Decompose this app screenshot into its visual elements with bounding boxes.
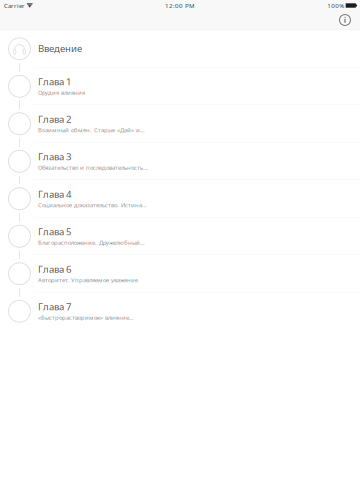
- staticText: 12:00 PM: [165, 1, 195, 10]
- staticText: Глава 5: [38, 225, 71, 238]
- staticText: Авторитет. Управляемое уважение: [38, 276, 138, 284]
- button[interactable]: Глава 4: [0, 180, 360, 217]
- button[interactable]: Глава 2: [0, 105, 360, 142]
- staticText: 100%: [327, 1, 344, 10]
- staticText: Carrier: [4, 1, 25, 10]
- staticText: Глава 4: [38, 187, 71, 201]
- button[interactable]: Глава 5: [0, 217, 360, 255]
- staticText: Глава 1: [38, 75, 71, 88]
- button[interactable]: Глава 7: [0, 292, 360, 330]
- button[interactable]: Глава 6: [0, 255, 360, 292]
- staticText: «Быстрорастворимое» влияние…: [38, 313, 134, 321]
- staticText: Глава 2: [38, 112, 71, 126]
- staticText: Обязательство и последовательность…: [38, 163, 148, 171]
- staticText: Орудия влияния: [38, 88, 85, 96]
- staticText: Взаимный обмен. Старые «Дай» и…: [38, 126, 145, 134]
- button[interactable]: Info: [332, 11, 358, 29]
- staticText: Глава 6: [38, 262, 71, 276]
- button[interactable]: Глава 1: [0, 67, 360, 105]
- button[interactable]: Глава 3: [0, 142, 360, 180]
- button[interactable]: Введение: [0, 30, 360, 67]
- staticText: Глава 7: [38, 300, 71, 313]
- staticText: Глава 3: [38, 150, 71, 163]
- staticText: Введение: [38, 42, 82, 55]
- staticText: Благорасположение. Дружелюбный…: [38, 238, 145, 246]
- staticText: Социальное доказательство. Истина…: [38, 201, 147, 209]
